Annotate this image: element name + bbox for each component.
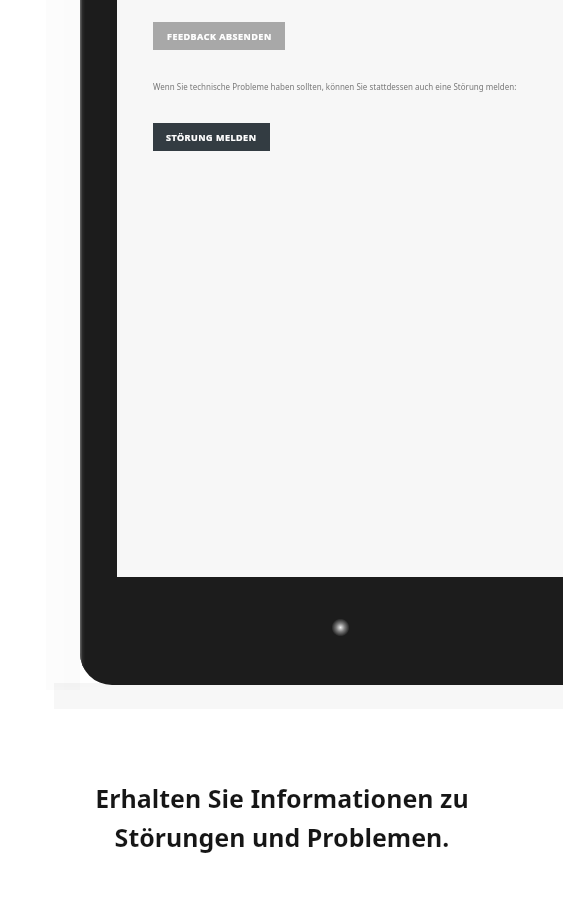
staticText: Wenn Sie technische Probleme haben sollt…: [153, 81, 517, 92]
button[interactable]: Störung melden: [153, 123, 270, 151]
staticText: FEEDBACK ABSENDEN: [167, 30, 272, 42]
staticText: Erhalten Sie Informationen zu Störungen …: [95, 781, 469, 855]
staticText: STÖRUNG MELDEN: [166, 131, 257, 143]
button[interactable]: FEEDBACK ABSENDEN: [153, 22, 285, 50]
